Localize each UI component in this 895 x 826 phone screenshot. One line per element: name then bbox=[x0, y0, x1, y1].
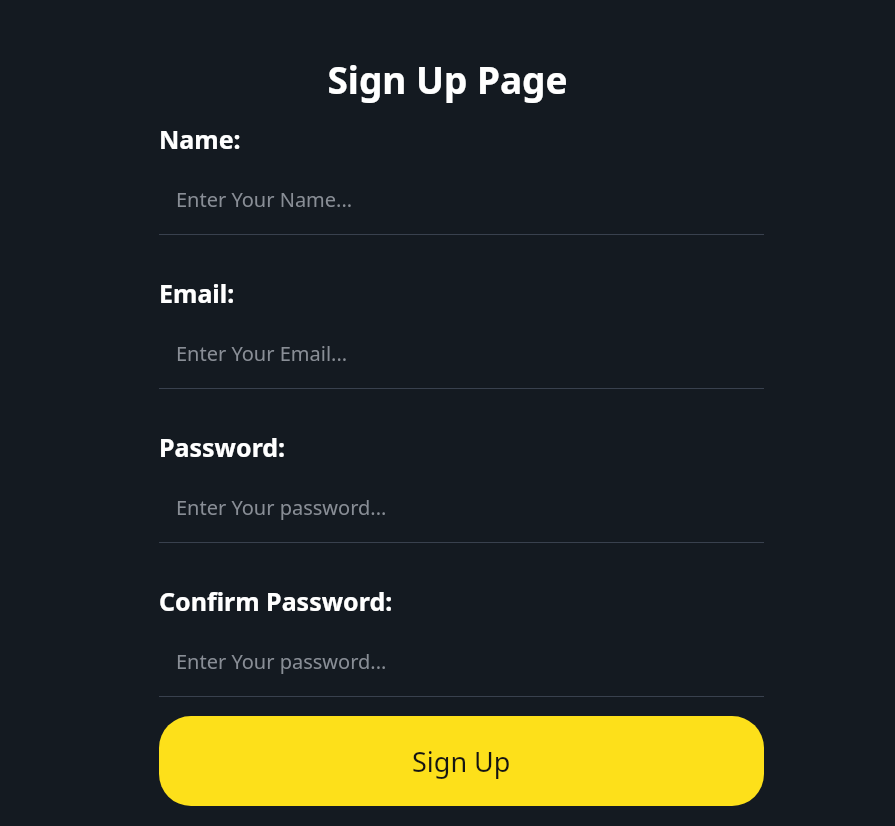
staticText: Password: bbox=[159, 430, 286, 464]
staticText: Enter Your Email... bbox=[176, 340, 348, 367]
staticText: Email: bbox=[159, 276, 235, 310]
staticText: Sign Up bbox=[412, 743, 511, 780]
button[interactable]: Enter Your Name... bbox=[159, 186, 764, 213]
button[interactable]: Enter Your password... bbox=[159, 648, 764, 675]
staticText: Enter Your password... bbox=[176, 494, 387, 521]
staticText: Confirm Password: bbox=[159, 584, 393, 618]
button[interactable]: Enter Your password... bbox=[159, 494, 764, 521]
staticText: Sign Up Page bbox=[0, 54, 895, 104]
staticText: Enter Your Name... bbox=[176, 186, 353, 213]
staticText: Name: bbox=[159, 122, 241, 156]
button[interactable]: Enter Your Email... bbox=[159, 340, 764, 367]
button[interactable]: Sign Up bbox=[159, 716, 764, 806]
staticText: Enter Your password... bbox=[176, 648, 387, 675]
